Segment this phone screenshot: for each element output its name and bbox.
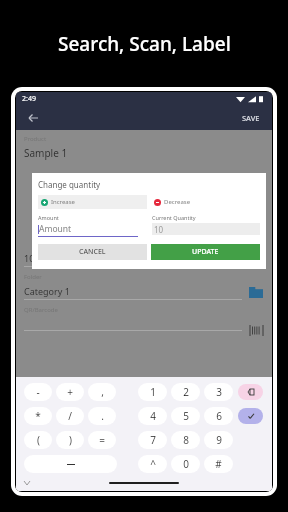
staticText: Category 1 bbox=[24, 285, 70, 297]
button[interactable]: 8 bbox=[171, 431, 200, 449]
staticText: ^ bbox=[150, 457, 156, 471]
button[interactable]: ( bbox=[24, 431, 52, 449]
staticText: Amount bbox=[38, 214, 59, 221]
button[interactable]: Hide keyboard bbox=[22, 478, 32, 488]
staticText: , bbox=[101, 385, 104, 399]
staticText: + bbox=[67, 385, 73, 399]
button[interactable]: . bbox=[88, 407, 116, 425]
staticText: CANCEL bbox=[79, 247, 106, 257]
staticText: Sample 1 bbox=[24, 146, 68, 160]
button[interactable]: Increase bbox=[38, 195, 147, 209]
staticText: 100.00 bbox=[147, 252, 176, 264]
staticText: 10 bbox=[154, 224, 164, 235]
staticText: Current Quantity bbox=[152, 214, 196, 221]
button[interactable]: Back bbox=[24, 109, 42, 127]
button[interactable]: Scan barcode bbox=[248, 322, 264, 338]
button[interactable]: Pick folder bbox=[248, 284, 264, 300]
button[interactable]: 7 bbox=[138, 431, 167, 449]
button[interactable]: + bbox=[56, 383, 84, 401]
staticText: Decrease bbox=[164, 198, 191, 206]
staticText: - bbox=[36, 385, 40, 399]
staticText: Product bbox=[24, 135, 47, 143]
staticText: SAVE bbox=[242, 113, 260, 123]
staticText: Change quantity bbox=[38, 179, 101, 190]
staticText: 0 bbox=[183, 457, 189, 471]
button[interactable]: Backspace bbox=[238, 384, 263, 400]
staticText: # bbox=[215, 457, 222, 471]
staticText: 8 bbox=[183, 433, 189, 447]
button[interactable]: 9 bbox=[204, 431, 233, 449]
staticText: Search, Scan, Label bbox=[58, 31, 231, 57]
button[interactable]: SAVE bbox=[238, 110, 264, 126]
staticText: 9 bbox=[216, 433, 222, 447]
staticText: ( bbox=[37, 433, 40, 447]
staticText: * bbox=[35, 409, 41, 423]
button[interactable]: ^ bbox=[138, 455, 167, 473]
button[interactable]: 0 bbox=[171, 455, 200, 473]
staticText: Folder bbox=[24, 273, 42, 281]
button[interactable]: 5 bbox=[171, 407, 200, 425]
button[interactable]: 3 bbox=[204, 383, 233, 401]
staticText: = bbox=[99, 433, 105, 447]
button[interactable]: = bbox=[88, 431, 116, 449]
staticText: 5 bbox=[183, 409, 189, 423]
staticText: 3 bbox=[216, 385, 222, 399]
button[interactable]: 2 bbox=[171, 383, 200, 401]
staticText: 2 bbox=[183, 385, 189, 399]
button[interactable]: 6 bbox=[204, 407, 233, 425]
staticText: 10.00 bbox=[24, 252, 48, 264]
button[interactable]: # bbox=[204, 455, 233, 473]
staticText: 7 bbox=[150, 433, 156, 447]
button[interactable]: * bbox=[24, 407, 52, 425]
button[interactable]: 1 bbox=[138, 383, 167, 401]
button[interactable]: UPDATE bbox=[151, 244, 260, 260]
button[interactable]: Enter bbox=[238, 408, 263, 424]
button[interactable]: , bbox=[88, 383, 116, 401]
staticText: . bbox=[101, 409, 104, 423]
staticText: / bbox=[68, 409, 72, 423]
button[interactable]: Decrease bbox=[151, 195, 260, 209]
staticText: 2:49 bbox=[22, 94, 36, 104]
staticText: Increase bbox=[51, 198, 75, 206]
staticText: 4 bbox=[150, 409, 156, 423]
staticText: 1 bbox=[150, 385, 156, 399]
staticText: ) bbox=[69, 433, 72, 447]
staticText: Amount bbox=[39, 223, 72, 235]
staticText: UPDATE bbox=[192, 247, 219, 257]
button[interactable]: CANCEL bbox=[38, 244, 147, 260]
staticText: 6 bbox=[216, 409, 222, 423]
button[interactable]: ) bbox=[56, 431, 84, 449]
button[interactable]: / bbox=[56, 407, 84, 425]
button[interactable]: 4 bbox=[138, 407, 167, 425]
staticText: QR/Barcode bbox=[24, 306, 58, 314]
button[interactable]: - bbox=[24, 383, 52, 401]
button[interactable]: Space bbox=[24, 455, 117, 473]
